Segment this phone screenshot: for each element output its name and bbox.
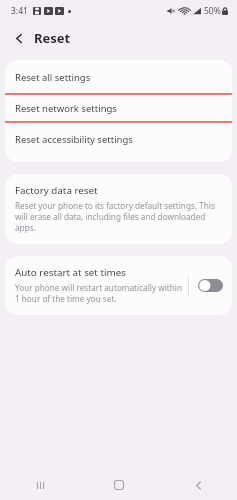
staticText: Reset network settings: [15, 102, 117, 115]
button[interactable]: Back: [9, 28, 29, 48]
staticText: Reset: [34, 29, 71, 47]
button[interactable]: Recent apps: [23, 470, 57, 500]
staticText: 3:41: [11, 5, 28, 17]
button[interactable]: Back: [181, 470, 215, 500]
button[interactable]: Reset network settings: [5, 94, 232, 122]
button[interactable]: Reset accessibility settings: [5, 122, 232, 156]
staticText: Reset all settings: [15, 71, 91, 84]
button[interactable]: Auto restart toggle, off: [189, 267, 232, 304]
staticText: 50%: [204, 5, 221, 17]
button[interactable]: Home: [102, 470, 136, 500]
staticText: Reset your phone to its factory default …: [15, 200, 220, 233]
button[interactable]: Auto restart at set times: [5, 256, 188, 315]
button[interactable]: Factory data reset: [5, 174, 232, 244]
button[interactable]: Reset all settings: [5, 60, 232, 94]
staticText: Reset accessibility settings: [15, 133, 133, 146]
staticText: Your phone will restart automatically wi…: [15, 282, 182, 304]
staticText: Auto restart at set times: [15, 266, 126, 279]
staticText: Factory data reset: [15, 184, 98, 197]
